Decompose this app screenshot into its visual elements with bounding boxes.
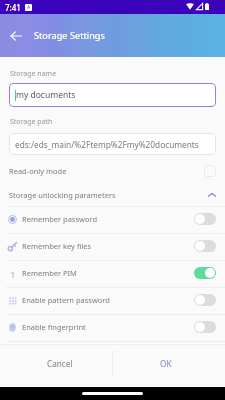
button[interactable]: OK	[113, 345, 218, 381]
button[interactable]	[194, 213, 216, 225]
staticText: Cancel	[47, 358, 73, 369]
button[interactable]: my documents	[9, 83, 216, 107]
staticText: Remember key files	[22, 241, 92, 251]
staticText: Remember password	[22, 214, 98, 224]
button[interactable]: Enable fingerprint	[0, 315, 225, 341]
staticText: A	[27, 4, 31, 11]
button[interactable]	[194, 321, 216, 333]
button[interactable]	[194, 267, 216, 279]
staticText: eds:/eds_main/%2Ftemp%2Fmy%20documents	[15, 139, 199, 150]
button[interactable]: eds:/eds_main/%2Ftemp%2Fmy%20documents	[9, 133, 216, 155]
button[interactable]: Read-only mode	[0, 159, 225, 183]
staticText: my documents	[16, 89, 76, 101]
button[interactable]: Remember password	[0, 207, 225, 233]
staticText: Storage unlocking parameters	[9, 190, 116, 200]
button[interactable]	[194, 294, 216, 306]
staticText: Enable pattern password	[22, 295, 110, 305]
staticText: OK	[160, 358, 172, 369]
button[interactable]: Enable pattern password	[0, 288, 225, 314]
button[interactable]: Back	[5, 25, 27, 47]
button[interactable]: Remember key files	[0, 234, 225, 260]
staticText: Read-only mode	[9, 166, 67, 176]
staticText: 1	[10, 269, 16, 278]
staticText: Storage name	[10, 69, 57, 79]
staticText: 7:41	[5, 2, 21, 13]
button[interactable]	[194, 240, 216, 252]
button[interactable]: Storage unlocking parameters	[0, 184, 225, 206]
staticText: Storage Settings	[34, 29, 105, 42]
button[interactable]: 1	[0, 261, 225, 287]
staticText: Enable fingerprint	[22, 322, 86, 332]
staticText: Remember PIM	[22, 268, 77, 278]
button[interactable]: Cancel	[7, 345, 112, 381]
staticText: Storage path	[10, 117, 53, 127]
